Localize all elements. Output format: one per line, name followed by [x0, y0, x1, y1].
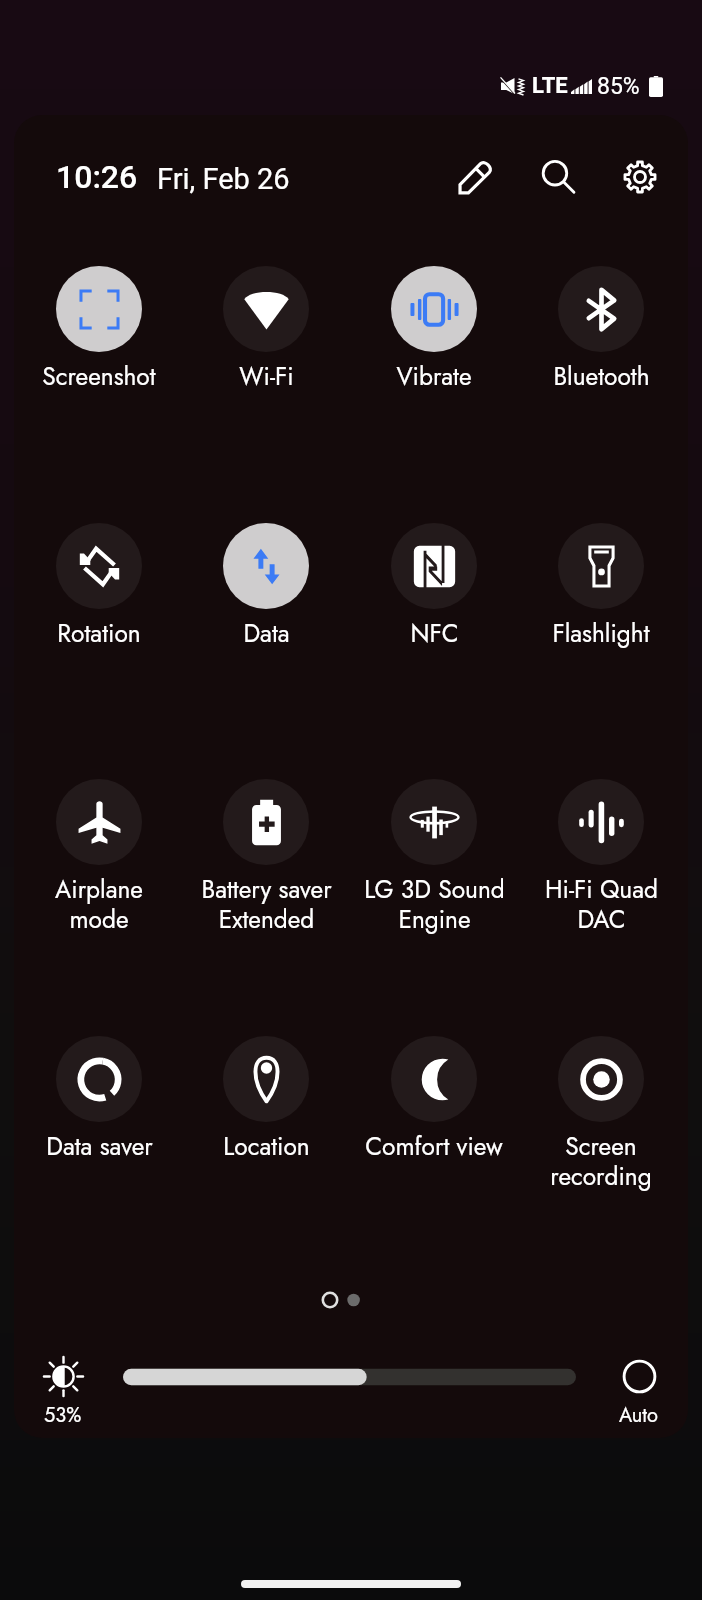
staticText: 85%: [597, 73, 640, 100]
button[interactable]: Screen recording: [521, 1030, 681, 1194]
button[interactable]: NFC: [354, 517, 514, 651]
button[interactable]: Auto: [600, 1353, 678, 1430]
staticText: Flashlight: [552, 616, 650, 651]
staticText: LG 3D Sound Engine: [364, 872, 505, 937]
button[interactable]: Location: [186, 1030, 346, 1164]
staticText: Vibrate: [396, 359, 472, 394]
staticText: Auto: [619, 1401, 659, 1430]
staticText: Battery saver Extended: [201, 872, 332, 937]
staticText: NFC: [410, 616, 459, 651]
button[interactable]: Settings: [614, 151, 666, 203]
staticText: Fri, Feb 26: [157, 162, 290, 196]
button[interactable]: Battery saver Extended: [186, 773, 346, 937]
button[interactable]: LG 3D Sound Engine: [354, 773, 514, 937]
staticText: Location: [223, 1129, 310, 1164]
staticText: Screenshot: [42, 359, 156, 394]
button[interactable]: 53%: [24, 1353, 102, 1430]
button[interactable]: Rotation: [19, 517, 179, 651]
button[interactable]: Data saver: [19, 1030, 179, 1164]
staticText: Screen recording: [550, 1129, 652, 1194]
staticText: 10:26: [56, 158, 138, 196]
staticText: Comfort view: [365, 1129, 503, 1164]
button[interactable]: Hi-Fi Quad DAC: [521, 773, 681, 937]
staticText: 53%: [44, 1401, 82, 1430]
button[interactable]: Screenshot: [19, 260, 179, 394]
button[interactable]: Wi-Fi: [186, 260, 346, 394]
button[interactable]: Airplane mode: [19, 773, 179, 937]
button[interactable]: [123, 1361, 576, 1393]
staticText: LTE: [532, 73, 568, 99]
button[interactable]: Comfort view: [354, 1030, 514, 1164]
button[interactable]: Edit: [450, 151, 502, 203]
staticText: Bluetooth: [553, 359, 650, 394]
staticText: Data: [243, 616, 290, 651]
button[interactable]: Search: [532, 151, 584, 203]
button[interactable]: Flashlight: [521, 517, 681, 651]
button[interactable]: Vibrate: [354, 260, 514, 394]
button[interactable]: Bluetooth: [521, 260, 681, 394]
button[interactable]: Data: [186, 517, 346, 651]
staticText: Wi-Fi: [239, 359, 294, 394]
staticText: Data saver: [46, 1129, 153, 1164]
staticText: Rotation: [57, 616, 141, 651]
staticText: Hi-Fi Quad DAC: [545, 872, 658, 937]
staticText: Airplane mode: [55, 872, 143, 937]
